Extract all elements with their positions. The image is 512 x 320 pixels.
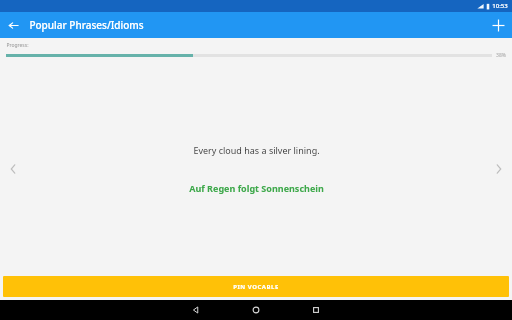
button[interactable]: Next	[486, 149, 512, 189]
button[interactable]: Previous	[0, 149, 26, 189]
button[interactable]: Home	[226, 300, 286, 320]
staticText: PIN VOCABLE	[233, 283, 279, 291]
staticText: 10:53	[492, 2, 508, 10]
button[interactable]: PIN VOCABLE	[3, 276, 509, 297]
staticText: Every cloud has a silver lining.	[193, 144, 320, 156]
staticText: 38%	[496, 52, 506, 59]
staticText: Auf Regen folgt Sonnenschein	[189, 182, 324, 194]
button[interactable]: Recent apps	[286, 300, 346, 320]
staticText: Popular Phrases/Idioms	[29, 18, 144, 32]
button[interactable]: Back	[166, 300, 226, 320]
button[interactable]: Add	[484, 12, 512, 38]
button[interactable]: Back	[0, 12, 26, 38]
staticText: Progress:	[6, 42, 29, 49]
